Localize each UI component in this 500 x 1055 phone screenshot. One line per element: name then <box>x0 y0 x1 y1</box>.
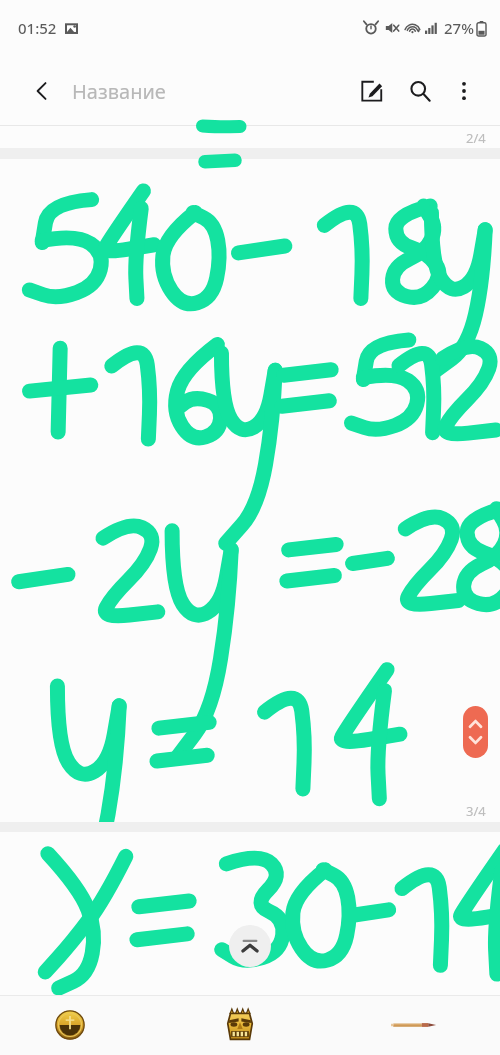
staticText: Название <box>72 78 166 105</box>
staticText: 01:52 <box>18 18 57 38</box>
button[interactable]: Scroll handle <box>463 706 488 758</box>
staticText: 2/4 <box>466 129 486 147</box>
button[interactable]: Search <box>398 69 442 113</box>
button[interactable]: Pencil <box>388 1005 440 1045</box>
staticText: 3/4 <box>466 802 486 820</box>
staticText: 27% <box>444 18 474 38</box>
button[interactable]: Back <box>22 71 62 111</box>
button[interactable]: Collapse <box>229 925 271 967</box>
button[interactable]: Pen <box>217 1002 263 1048</box>
button[interactable]: More options <box>444 71 484 111</box>
button[interactable]: Brush <box>48 1003 92 1047</box>
button[interactable]: Edit <box>350 69 394 113</box>
